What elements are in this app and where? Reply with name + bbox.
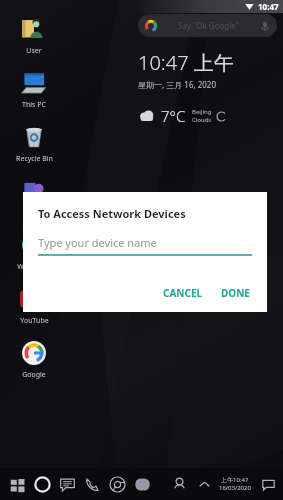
staticText: 10:47 上午 [138, 49, 234, 76]
staticText: WhatsApp [17, 262, 51, 272]
staticText: 上午10:47 [221, 476, 249, 484]
staticText: Clouds [192, 116, 212, 124]
staticText: Beijing [192, 108, 212, 116]
button[interactable]: DONE [214, 282, 257, 304]
staticText: 7°C [161, 106, 186, 126]
staticText: Teams [23, 208, 45, 218]
staticText: DONE [221, 286, 250, 300]
button[interactable]: Google [8, 338, 60, 380]
button[interactable]: Recycle Bin [8, 122, 60, 164]
button[interactable]: Start [5, 468, 30, 500]
button[interactable]: Chrome [105, 468, 130, 500]
staticText: To Access Network Devices [38, 206, 186, 221]
button[interactable]: WhatsApp [8, 230, 60, 272]
button[interactable]: 上午10:47 [217, 476, 253, 492]
button[interactable]: Phone [80, 468, 105, 500]
button[interactable]: This PC [8, 68, 60, 110]
button[interactable]: Show hidden icons [192, 468, 217, 500]
button[interactable]: Cortana [30, 468, 55, 500]
button[interactable]: App [130, 468, 155, 500]
button[interactable]: Say "Ok Google" [138, 14, 277, 37]
staticText: 星期一, 三月 16, 2020 [138, 79, 216, 90]
button[interactable]: 7°C [138, 106, 226, 126]
staticText: This PC [22, 100, 46, 110]
staticText: Recycle Bin [16, 154, 53, 164]
staticText: Google [22, 370, 46, 380]
button[interactable]: CANCEL [156, 282, 210, 304]
staticText: Type your device name [38, 235, 157, 250]
button[interactable]: Type your device name [38, 235, 252, 256]
button[interactable]: Teams [8, 176, 60, 218]
button[interactable]: User [8, 14, 60, 56]
staticText: User [26, 46, 42, 56]
staticText: 10:47 [258, 1, 279, 12]
staticText: YouTube [20, 316, 49, 326]
button[interactable]: YouTube [8, 284, 60, 326]
button[interactable]: Action Center [256, 472, 280, 496]
button[interactable]: Account [167, 468, 192, 500]
staticText: 16/03/2020 [219, 484, 251, 492]
staticText: CANCEL [163, 286, 203, 300]
staticText: Say "Ok Google" [158, 20, 259, 31]
button[interactable]: Task View [55, 468, 80, 500]
